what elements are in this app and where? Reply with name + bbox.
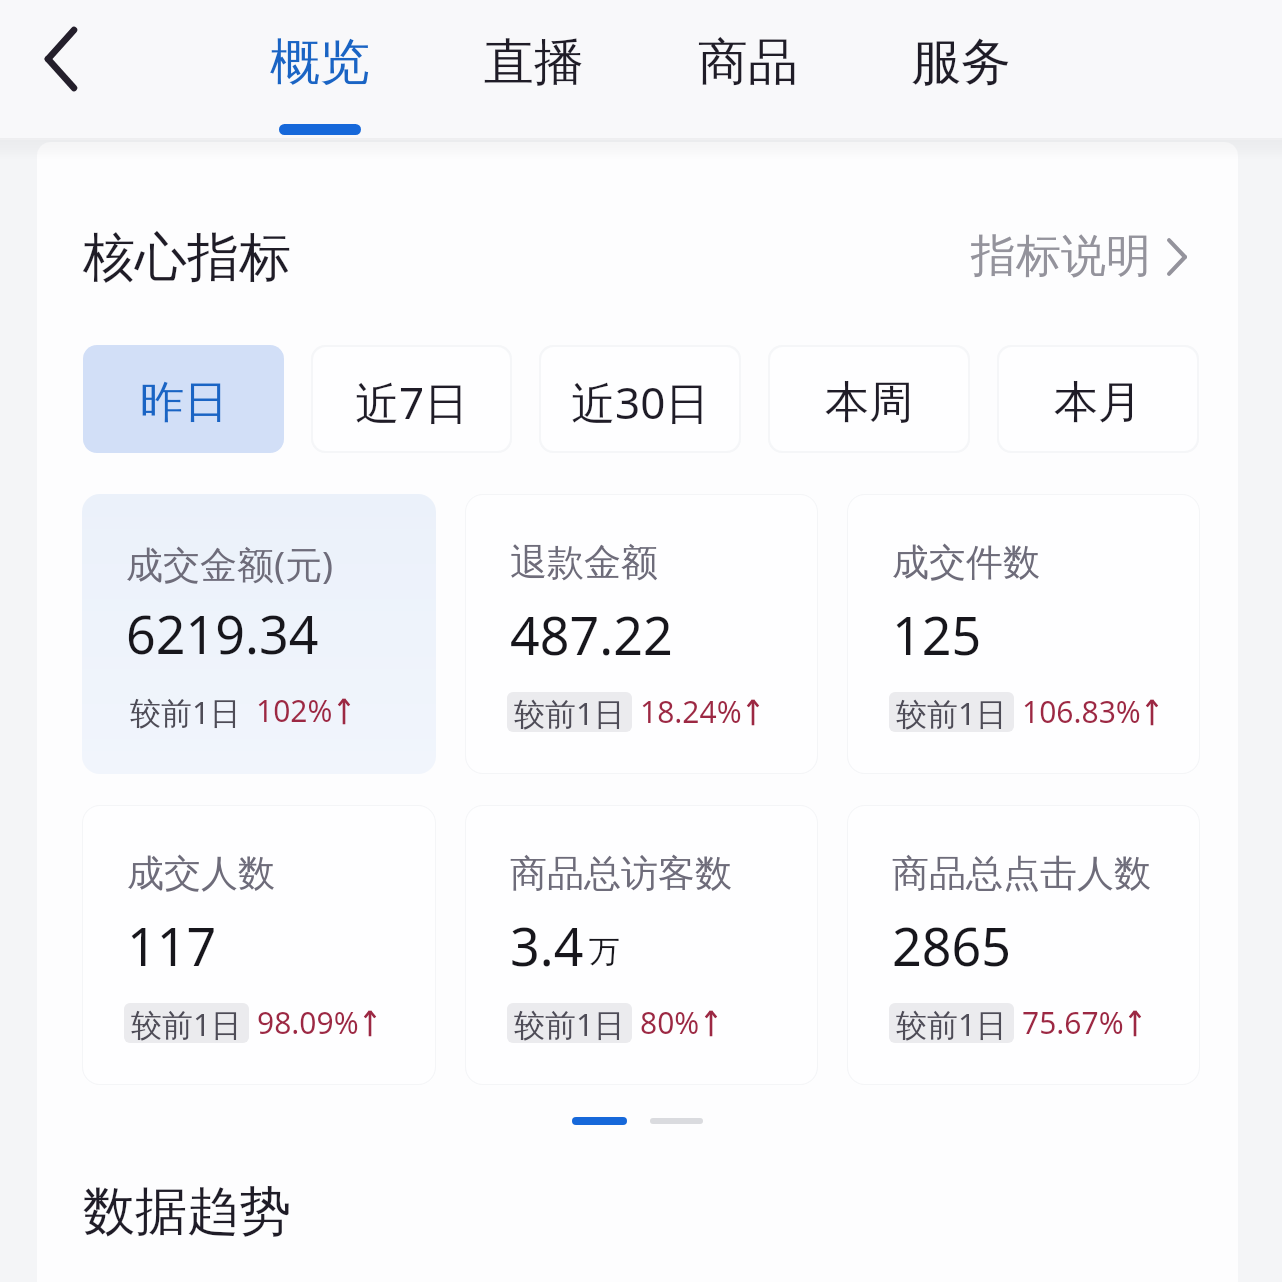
button[interactable]: 服务 bbox=[861, 0, 1061, 140]
staticText: 成交金额(元) bbox=[126, 538, 334, 589]
staticText: 退款金额 bbox=[510, 539, 658, 586]
button[interactable]: 昨日 bbox=[83, 345, 284, 453]
button[interactable]: 成交金额(元) bbox=[82, 494, 436, 774]
staticText: 6219.34 bbox=[126, 598, 319, 669]
button[interactable]: 概览 bbox=[220, 0, 420, 140]
button[interactable]: 指标说明 bbox=[971, 228, 1187, 285]
staticText: 98.09% bbox=[257, 1002, 359, 1043]
staticText: 3.4 bbox=[510, 910, 584, 981]
button[interactable]: 商品 bbox=[648, 0, 848, 140]
staticText: 487.22 bbox=[510, 599, 673, 670]
staticText: 较前1日 bbox=[896, 692, 1007, 732]
button[interactable]: 成交件数 bbox=[848, 495, 1199, 773]
staticText: 117 bbox=[127, 910, 217, 981]
staticText: 近30日 bbox=[571, 372, 710, 432]
staticText: 较前1日 bbox=[896, 1003, 1007, 1043]
button[interactable]: 近30日 bbox=[541, 347, 739, 451]
staticText: 125 bbox=[892, 599, 982, 670]
staticText: 较前1日 bbox=[514, 692, 625, 732]
button[interactable]: 直播 bbox=[434, 0, 634, 140]
staticText: 较前1日 bbox=[514, 1003, 625, 1043]
button[interactable]: 成交人数 bbox=[83, 806, 435, 1084]
staticText: 成交件数 bbox=[892, 539, 1040, 586]
button[interactable]: 商品总点击人数 bbox=[848, 806, 1199, 1084]
staticText: 服务 bbox=[911, 31, 1011, 94]
staticText: 18.24% bbox=[640, 691, 742, 732]
button[interactable]: Back bbox=[24, 22, 98, 96]
staticText: 较前1日 bbox=[131, 1003, 242, 1043]
staticText: 75.67% bbox=[1022, 1002, 1124, 1043]
staticText: 成交人数 bbox=[127, 850, 275, 897]
staticText: 80% bbox=[640, 1002, 700, 1043]
staticText: 2865 bbox=[892, 910, 1011, 981]
staticText: 商品 bbox=[698, 31, 798, 94]
staticText: 概览 bbox=[270, 31, 370, 94]
button[interactable]: 本月 bbox=[999, 347, 1197, 451]
button[interactable]: 商品总访客数 bbox=[466, 806, 817, 1084]
staticText: 万 bbox=[589, 932, 620, 971]
staticText: 近7日 bbox=[355, 372, 469, 432]
staticText: 直播 bbox=[484, 31, 584, 94]
staticText: 昨日 bbox=[140, 375, 228, 430]
staticText: 指标说明 bbox=[971, 228, 1151, 285]
staticText: 商品总点击人数 bbox=[892, 850, 1151, 897]
staticText: 核心指标 bbox=[83, 225, 291, 291]
staticText: 本月 bbox=[1054, 375, 1142, 430]
button[interactable]: 近7日 bbox=[313, 347, 510, 451]
staticText: 数据趋势 bbox=[83, 1179, 291, 1245]
button[interactable]: 本周 bbox=[770, 347, 968, 451]
staticText: 商品总访客数 bbox=[510, 850, 732, 897]
staticText: 本周 bbox=[825, 375, 913, 430]
staticText: 102% bbox=[256, 690, 333, 731]
staticText: 106.83% bbox=[1022, 691, 1141, 732]
button[interactable]: 退款金额 bbox=[466, 495, 817, 773]
staticText: 较前1日 bbox=[130, 691, 241, 731]
